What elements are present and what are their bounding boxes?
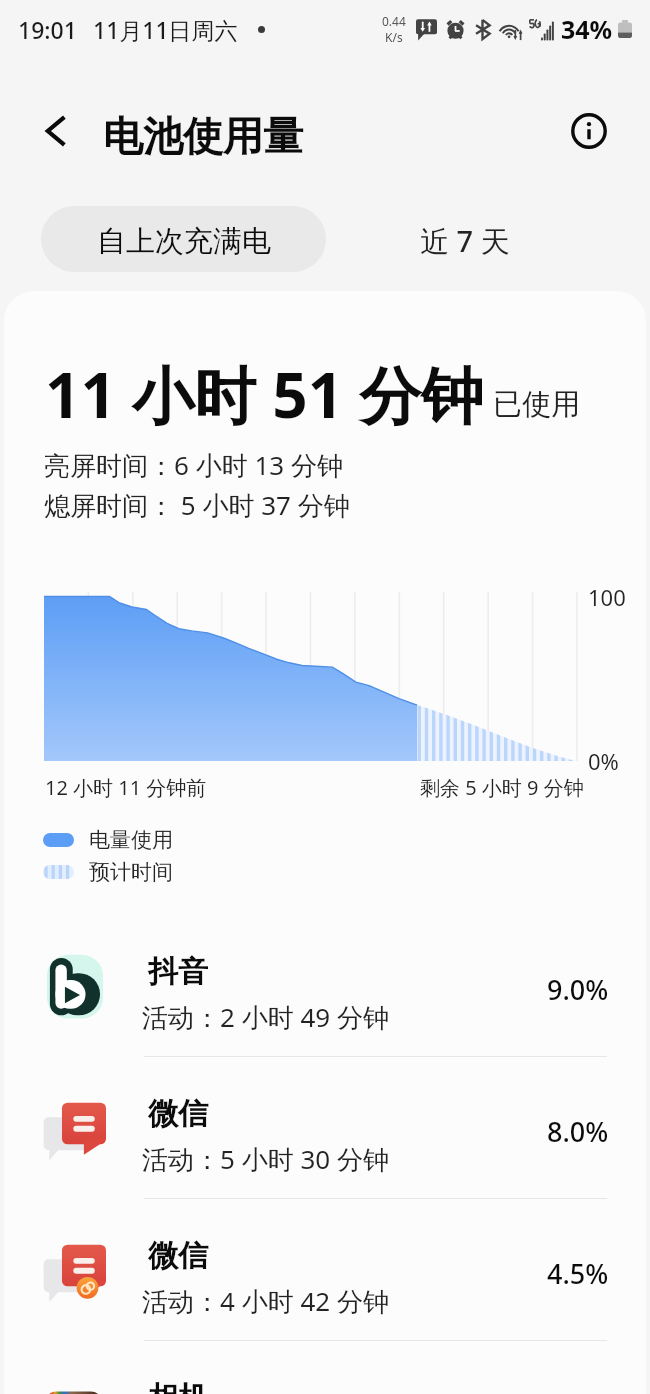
staticText: 11 小时 51 分钟	[45, 352, 484, 437]
button[interactable]: 自上次充满电	[41, 206, 326, 272]
button[interactable]: Information	[567, 109, 611, 153]
button[interactable]: 微信	[4, 1199, 646, 1341]
staticText: 相机	[148, 1379, 208, 1394]
staticText: 0%	[588, 746, 619, 776]
staticText: 活动：5 小时 30 分钟	[142, 1141, 389, 1177]
staticText: 9.0%	[547, 971, 609, 1008]
staticText: 0.44	[382, 13, 406, 29]
staticText: K/s	[385, 29, 403, 45]
staticText: 自上次充满电	[97, 223, 271, 260]
staticText: 预计时间	[89, 859, 173, 885]
button[interactable]: 预计时间	[43, 859, 173, 885]
staticText: 微信	[148, 1095, 208, 1133]
staticText: 已使用	[493, 386, 580, 423]
button[interactable]: Back	[34, 108, 80, 154]
staticText: 12 小时 11 分钟前	[45, 774, 207, 801]
staticText: 34%	[561, 12, 613, 46]
button[interactable]: 电量使用	[43, 827, 173, 853]
staticText: 微信	[148, 1237, 208, 1275]
button[interactable]: 相机	[4, 1341, 646, 1394]
staticText: 活动：2 小时 49 分钟	[142, 999, 389, 1035]
staticText: 抖音	[148, 953, 208, 991]
staticText: 4.5%	[547, 1255, 609, 1292]
staticText: 11月11日周六	[93, 14, 238, 45]
button[interactable]: 抖音	[4, 915, 646, 1057]
staticText: 19:01	[18, 14, 77, 45]
button[interactable]: 微信	[4, 1057, 646, 1199]
staticText: 电量使用	[89, 827, 173, 853]
staticText: 电池使用量	[103, 111, 303, 161]
staticText: 亮屏时间：6 小时 13 分钟	[44, 447, 343, 483]
staticText: 剩余 5 小时 9 分钟	[420, 774, 584, 801]
button[interactable]: 近 7 天	[395, 206, 535, 272]
staticText: 8.0%	[547, 1113, 609, 1150]
staticText: 活动：4 小时 42 分钟	[142, 1283, 389, 1319]
staticText: 近 7 天	[420, 221, 510, 261]
staticText: 熄屏时间： 5 小时 37 分钟	[44, 487, 350, 523]
staticText: 100	[588, 582, 626, 612]
